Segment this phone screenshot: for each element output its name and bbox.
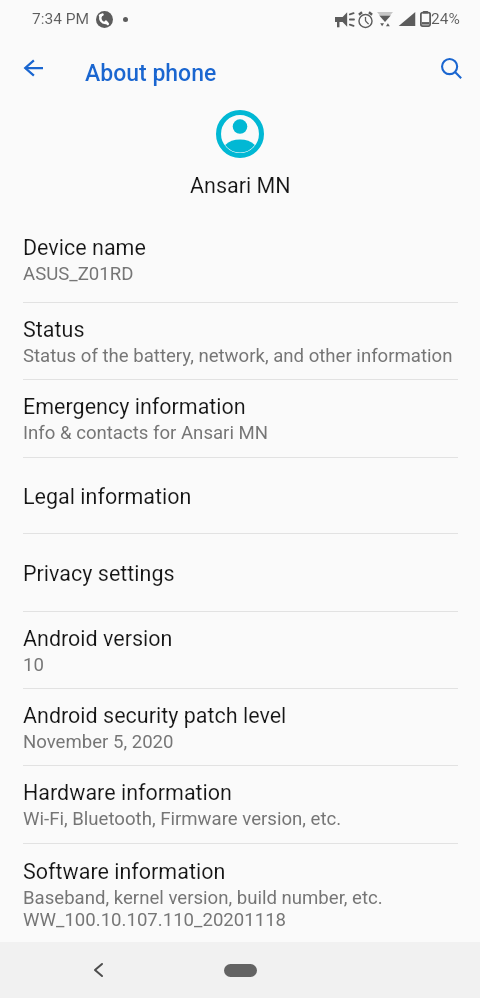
button[interactable]: Legal information bbox=[0, 458, 480, 534]
staticText: Legal information bbox=[23, 483, 192, 509]
button[interactable]: Search bbox=[426, 45, 472, 91]
staticText: Android version bbox=[23, 625, 173, 651]
staticText: Software information bbox=[23, 858, 226, 884]
staticText: Emergency information bbox=[23, 393, 246, 419]
staticText: 10 bbox=[23, 654, 44, 676]
button[interactable]: Device name bbox=[0, 222, 480, 303]
button[interactable]: Software information bbox=[0, 844, 480, 944]
button[interactable]: Home bbox=[224, 964, 257, 977]
staticText: Status bbox=[23, 316, 85, 342]
staticText: Device name bbox=[23, 234, 146, 260]
button[interactable]: Emergency information bbox=[0, 380, 480, 458]
button[interactable]: Android security patch level bbox=[0, 689, 480, 766]
staticText: 24% bbox=[431, 10, 460, 28]
staticText: Info & contacts for Ansari MN bbox=[23, 422, 269, 444]
staticText: WW_100.10.107.110_20201118 bbox=[23, 909, 287, 931]
button[interactable]: Hardware information bbox=[0, 766, 480, 844]
staticText: Wi-Fi, Bluetooth, Firmware version, etc. bbox=[23, 808, 342, 830]
staticText: Privacy settings bbox=[23, 560, 175, 586]
button[interactable]: Android version bbox=[0, 612, 480, 689]
button[interactable]: Ansari MN bbox=[0, 96, 480, 222]
button[interactable]: Back bbox=[74, 946, 122, 994]
staticText: 7:34 PM bbox=[32, 10, 90, 28]
staticText: Android security patch level bbox=[23, 702, 287, 728]
staticText: Baseband, kernel version, build number, … bbox=[23, 887, 383, 909]
staticText: November 5, 2020 bbox=[23, 731, 174, 753]
button[interactable]: Back bbox=[9, 45, 55, 91]
staticText: Status of the battery, network, and othe… bbox=[23, 345, 453, 367]
staticText: Ansari MN bbox=[190, 172, 291, 198]
button[interactable]: Status bbox=[0, 303, 480, 380]
staticText: ASUS_Z01RD bbox=[23, 263, 134, 285]
staticText: About phone bbox=[85, 60, 217, 87]
button[interactable]: Privacy settings bbox=[0, 534, 480, 612]
staticText: Hardware information bbox=[23, 779, 232, 805]
